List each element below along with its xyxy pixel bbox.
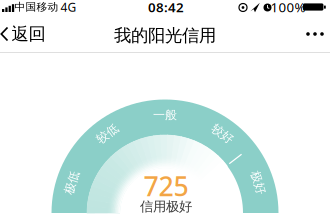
staticText: 100% — [270, 0, 305, 16]
staticText: 极低 — [60, 175, 84, 190]
staticText: 返回 — [11, 23, 45, 45]
button[interactable] — [306, 32, 324, 36]
staticText: 较好 — [211, 126, 235, 141]
staticText: 极好 — [246, 175, 270, 190]
staticText: 4G — [60, 0, 76, 15]
staticText: 08:42 — [148, 0, 184, 16]
staticText: 信用极好 — [140, 198, 192, 215]
staticText: 较低 — [95, 126, 119, 141]
staticText: 一般 — [153, 108, 177, 122]
button[interactable]: 返回 — [0, 23, 45, 45]
staticText: 725 — [143, 168, 188, 204]
staticText: 中国移动 — [14, 0, 58, 13]
staticText: 我的阳光信用 — [114, 25, 216, 46]
